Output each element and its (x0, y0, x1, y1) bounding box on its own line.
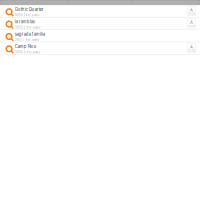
button[interactable]: Route (187, 43, 196, 53)
button[interactable]: Gothic Quarter (0, 5, 200, 17)
button[interactable]: Camp Nou (0, 42, 200, 54)
staticText: Route (188, 49, 195, 52)
staticText: Gothic Quarter (15, 7, 44, 12)
staticText: 3053.2 km away (15, 26, 41, 29)
button[interactable]: Route (187, 19, 196, 28)
staticText: Route (188, 12, 195, 15)
staticText: Camp Nou (15, 44, 37, 49)
staticText: 3056.4 km away (15, 50, 41, 54)
button[interactable]: la ramblas (0, 17, 200, 30)
staticText: la ramblas (15, 19, 35, 24)
staticText: sagrada familia (15, 31, 45, 37)
button[interactable]: sagrada familia (0, 30, 200, 42)
button[interactable]: Route (187, 6, 196, 16)
staticText: 3059.1 km away (15, 13, 40, 17)
staticText: 3057.7 km away (15, 38, 40, 41)
staticText: Route (188, 24, 195, 27)
